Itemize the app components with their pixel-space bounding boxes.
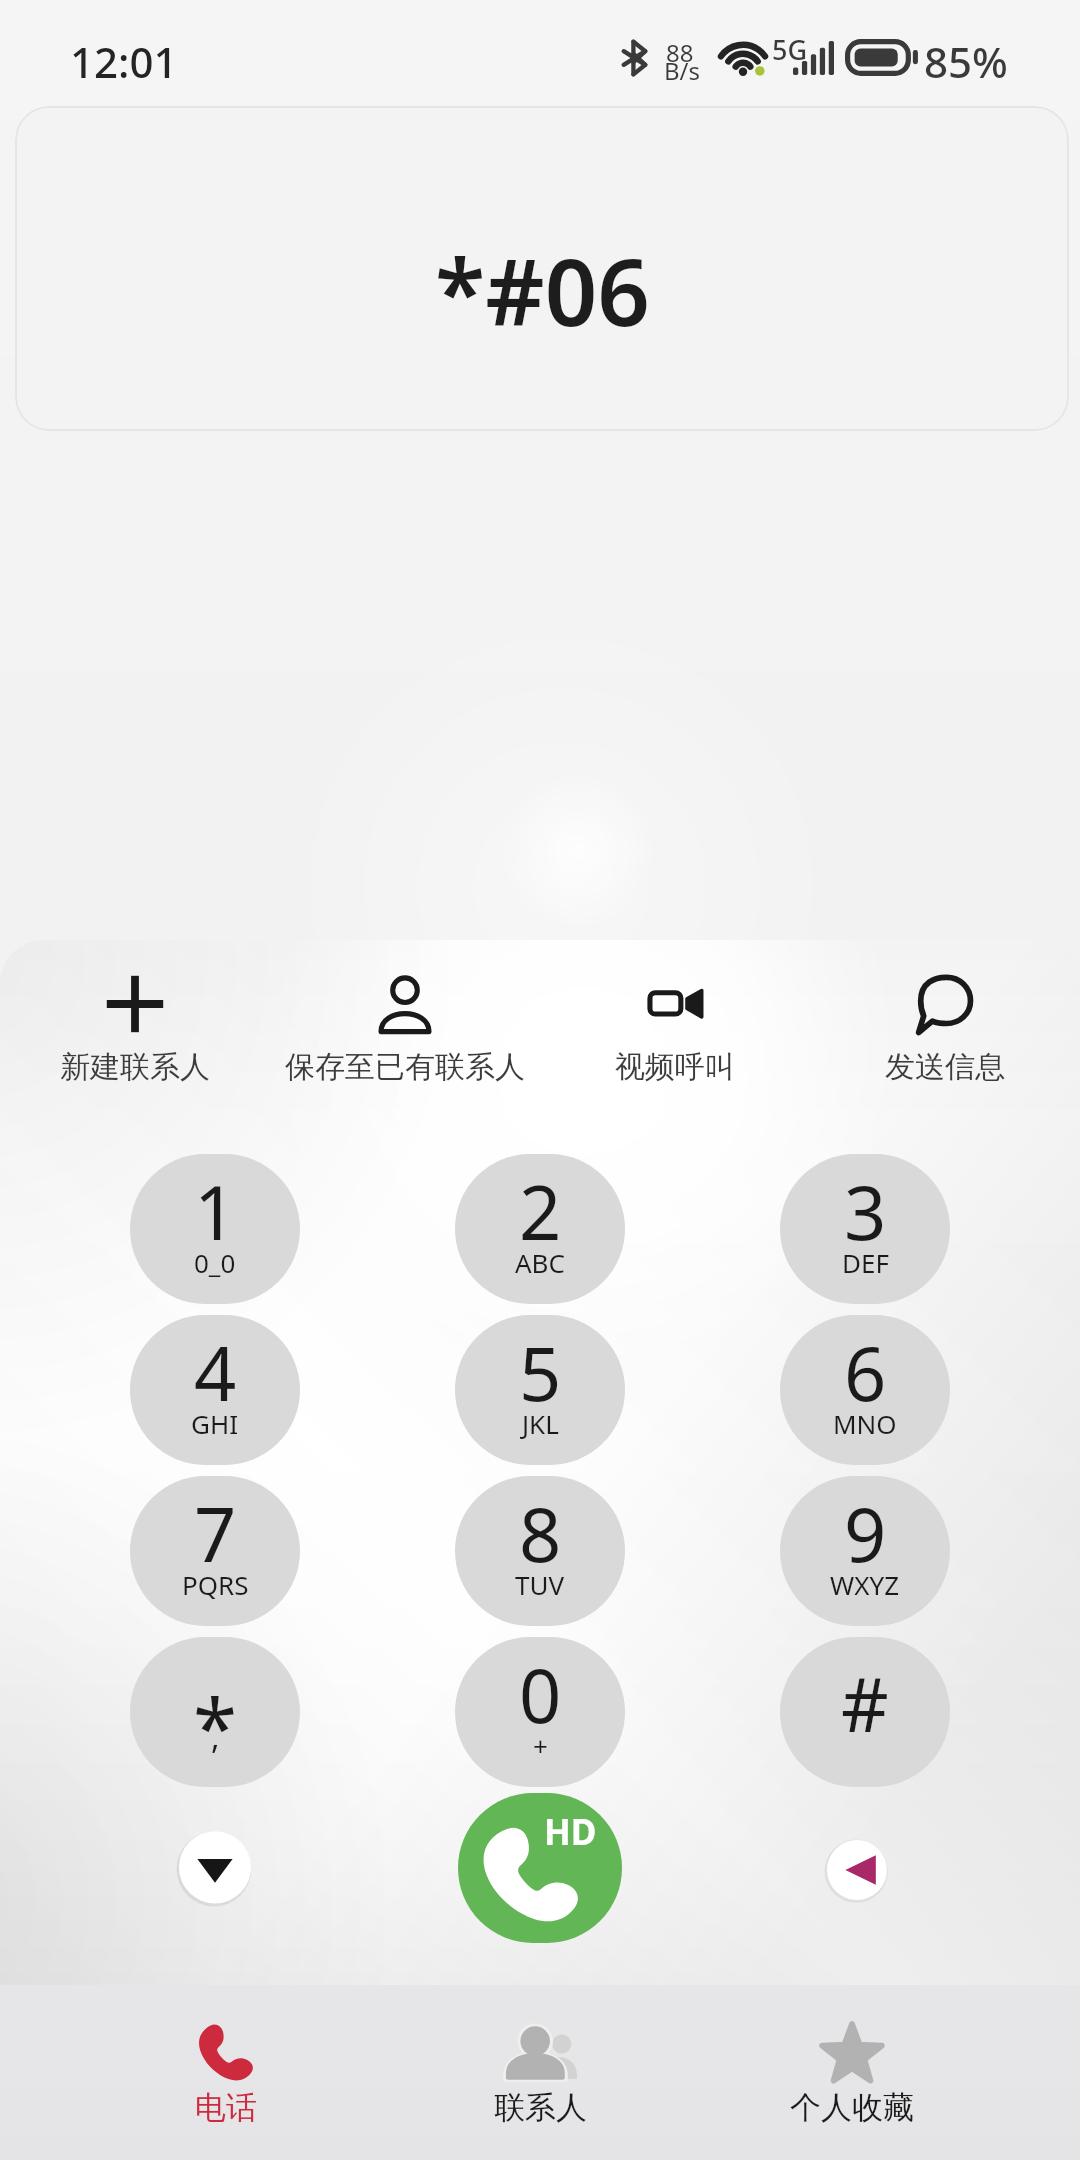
staticText: 9 xyxy=(844,1483,887,1584)
button[interactable]: 6 xyxy=(780,1315,950,1465)
button[interactable]: 7 xyxy=(130,1476,300,1626)
staticText: 1 xyxy=(194,1161,237,1262)
staticText: 视频呼叫 xyxy=(615,1048,735,1086)
staticText: JKL xyxy=(522,1406,559,1441)
button[interactable]: 视频呼叫 xyxy=(540,974,810,1086)
staticText: *#06 xyxy=(435,228,650,353)
button[interactable]: 联系人 xyxy=(400,2010,680,2160)
button[interactable]: * xyxy=(130,1637,300,1787)
staticText: # xyxy=(841,1653,889,1754)
staticText: ABC xyxy=(515,1245,565,1280)
button[interactable]: 个人收藏 xyxy=(712,2010,992,2160)
button[interactable]: 1 xyxy=(130,1154,300,1304)
staticText: DEF xyxy=(842,1245,889,1280)
staticText: 个人收藏 xyxy=(790,2088,914,2127)
staticText: 12:01 xyxy=(70,33,178,90)
button[interactable]: 5 xyxy=(455,1315,625,1465)
staticText: 2 xyxy=(519,1161,562,1262)
staticText: MNO xyxy=(833,1406,897,1441)
staticText: + xyxy=(533,1728,548,1763)
staticText: PQRS xyxy=(182,1567,249,1602)
staticText: 6 xyxy=(844,1322,887,1423)
button[interactable]: Hide keypad xyxy=(171,1826,259,1914)
staticText: 0_0 xyxy=(194,1245,236,1280)
staticText: 电话 xyxy=(195,2088,257,2127)
staticText: 8 xyxy=(519,1483,562,1584)
staticText: * xyxy=(193,1671,238,1780)
button[interactable]: 0 xyxy=(455,1637,625,1787)
button[interactable]: 3 xyxy=(780,1154,950,1304)
button[interactable]: 电话 xyxy=(86,2010,366,2160)
staticText: 4 xyxy=(194,1322,237,1423)
staticText: 保存至已有联系人 xyxy=(285,1048,525,1086)
staticText: 新建联系人 xyxy=(60,1048,210,1086)
button[interactable]: Backspace xyxy=(820,1830,900,1910)
button[interactable]: 新建联系人 xyxy=(0,974,270,1086)
button[interactable]: 发送信息 xyxy=(810,974,1080,1086)
button[interactable]: 2 xyxy=(455,1154,625,1304)
staticText: 7 xyxy=(194,1483,237,1584)
button[interactable]: 保存至已有联系人 xyxy=(270,974,540,1086)
staticText: 3 xyxy=(844,1161,887,1262)
staticText: 联系人 xyxy=(494,2088,587,2127)
staticText: 5G xyxy=(772,31,808,68)
staticText: WXYZ xyxy=(830,1567,900,1602)
staticText: 5 xyxy=(519,1322,562,1423)
staticText: 发送信息 xyxy=(885,1048,1005,1086)
staticText: , xyxy=(211,1715,220,1759)
staticText: TUV xyxy=(515,1567,565,1602)
button[interactable]: 8 xyxy=(455,1476,625,1626)
button[interactable]: # xyxy=(780,1637,950,1787)
button[interactable]: 4 xyxy=(130,1315,300,1465)
staticText: 88 xyxy=(666,36,694,69)
button[interactable]: Call xyxy=(458,1793,622,1943)
staticText: B/s xyxy=(664,54,701,87)
staticText: HD xyxy=(544,1808,597,1856)
staticText: GHI xyxy=(191,1406,239,1441)
staticText: 85% xyxy=(924,33,1008,90)
staticText: 0 xyxy=(519,1644,562,1745)
button[interactable]: 9 xyxy=(780,1476,950,1626)
